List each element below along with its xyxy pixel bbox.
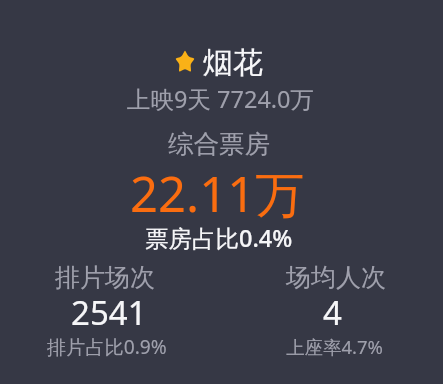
button[interactable]: 场均人次 4 上座率4.7%: [221, 256, 443, 364]
staticText: 4: [323, 290, 342, 335]
staticText: 22.11万: [130, 160, 305, 227]
staticText: 排片占比0.9%: [47, 333, 167, 359]
staticText: 排片场次: [55, 262, 155, 293]
staticText: 场均人次: [286, 262, 386, 293]
staticText: 上映9天 7724.0万: [127, 83, 315, 115]
staticText: 综合票房: [168, 128, 270, 160]
button[interactable]: 烟花 — 收藏: [175, 44, 263, 82]
staticText: 烟花: [203, 44, 263, 82]
staticText: 上座率4.7%: [286, 334, 383, 359]
staticText: 2541: [71, 290, 147, 335]
button[interactable]: 排片场次 2541 排片占比0.9%: [0, 256, 221, 364]
staticText: 票房占比0.4%: [145, 222, 293, 254]
